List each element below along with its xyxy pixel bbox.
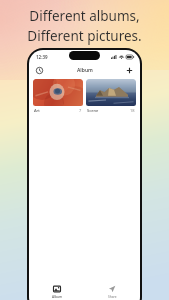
button[interactable]: Scene	[86, 79, 136, 113]
staticText: Album	[52, 295, 62, 299]
staticText: Art	[34, 108, 40, 113]
button[interactable]: Art	[33, 79, 83, 113]
button[interactable]: Settings	[34, 65, 45, 76]
staticText: Album	[77, 67, 93, 74]
button[interactable]: Add album	[124, 65, 135, 76]
staticText: Different albums,	[29, 7, 140, 25]
button[interactable]: Share	[84, 282, 140, 300]
staticText: Different pictures.	[27, 27, 142, 45]
staticText: 7	[79, 108, 82, 113]
staticText: Share	[108, 295, 117, 299]
staticText: Scene	[87, 108, 99, 113]
button[interactable]: Album	[29, 282, 84, 300]
staticText: 12:39	[36, 54, 48, 60]
staticText: 18	[130, 108, 135, 113]
